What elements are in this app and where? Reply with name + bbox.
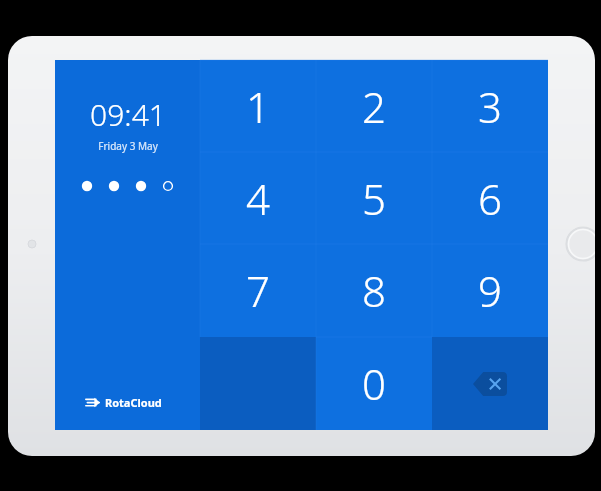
button[interactable]: Backspace bbox=[432, 337, 548, 430]
staticText: 7 bbox=[246, 262, 270, 319]
button[interactable]: 7 bbox=[200, 244, 316, 337]
staticText: 3 bbox=[478, 78, 502, 135]
button[interactable]: 6 bbox=[432, 152, 548, 244]
staticText: 5 bbox=[362, 170, 386, 227]
staticText: 6 bbox=[478, 170, 502, 227]
staticText: 0 bbox=[362, 355, 386, 412]
button[interactable]: 2 bbox=[316, 60, 432, 152]
button[interactable]: 4 bbox=[200, 152, 316, 244]
button[interactable]: 9 bbox=[432, 244, 548, 337]
button[interactable]: 8 bbox=[316, 244, 432, 337]
button[interactable]: 0 bbox=[316, 337, 432, 430]
staticText: Friday 3 May bbox=[98, 139, 158, 153]
staticText: RotaCloud bbox=[105, 395, 162, 410]
staticText: 09:41 bbox=[90, 94, 166, 135]
staticText: 9 bbox=[478, 262, 502, 319]
button[interactable]: 5 bbox=[316, 152, 432, 244]
button[interactable]: 3 bbox=[432, 60, 548, 152]
staticText: 4 bbox=[246, 170, 270, 227]
button[interactable]: 1 bbox=[200, 60, 316, 152]
staticText: 8 bbox=[362, 262, 386, 319]
other: Home bbox=[565, 226, 595, 262]
staticText: 1 bbox=[246, 78, 270, 135]
staticText: 2 bbox=[362, 78, 386, 135]
